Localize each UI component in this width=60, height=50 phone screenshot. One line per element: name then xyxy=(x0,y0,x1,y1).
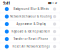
staticText: Keyboard & Text Replacement xyxy=(11,30,50,33)
staticText: Reset All Network Settings xyxy=(12,45,49,48)
staticText: Network Behaviour & Routing xyxy=(10,15,52,18)
button[interactable]: Transfer or Reset iPhone xyxy=(0,36,60,42)
staticText: ▮▮▮ ≈ ▰ xyxy=(48,1,57,4)
button[interactable]: Background Blur & Effects xyxy=(0,6,60,12)
staticText: Appearance & Display xyxy=(16,22,45,26)
button[interactable]: Network Behaviour & Routing xyxy=(0,13,60,20)
staticText: 9:41 xyxy=(3,0,10,5)
staticText: Transfer or Reset iPhone xyxy=(13,37,48,41)
button[interactable]: Reset All Network Settings xyxy=(0,43,60,50)
button[interactable]: Appearance & Display xyxy=(0,21,60,27)
button[interactable]: Keyboard & Text Replacement xyxy=(0,28,60,35)
staticText: Background Blur & Effects xyxy=(13,7,48,11)
